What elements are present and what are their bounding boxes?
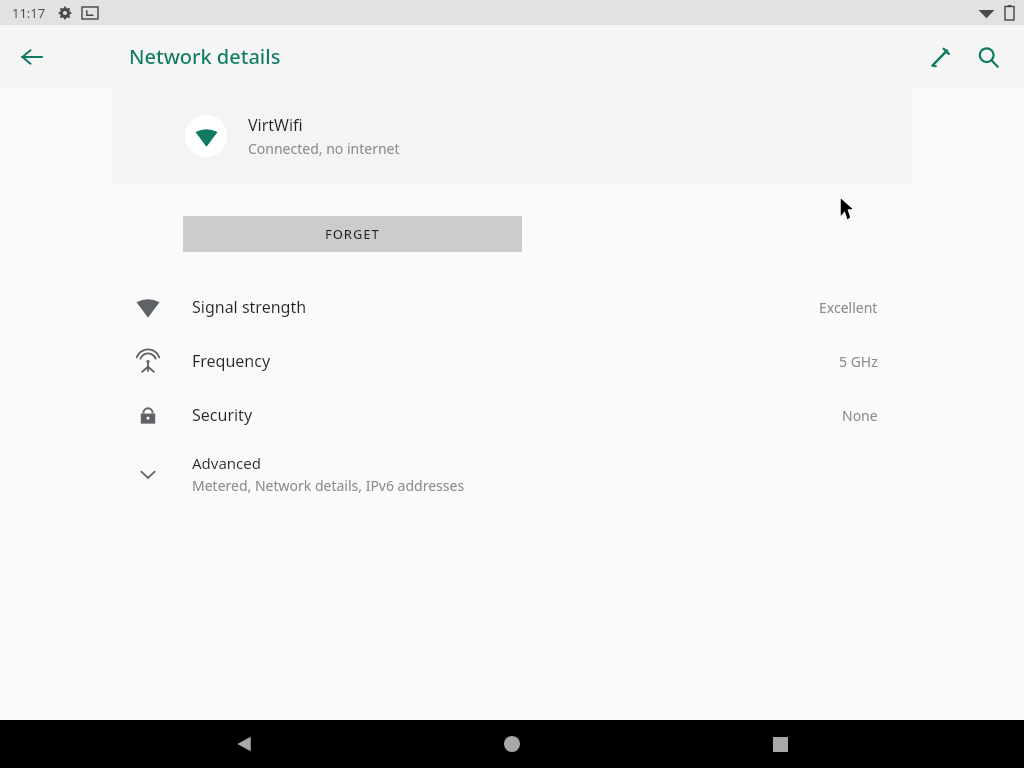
staticText: Excellent [819, 298, 878, 317]
button[interactable]: Recent apps [756, 720, 804, 768]
button[interactable]: VirtWifi [112, 88, 912, 184]
button[interactable]: Back [8, 33, 56, 81]
staticText: Security [192, 404, 253, 426]
button[interactable]: Edit [916, 33, 964, 81]
staticText: Advanced [192, 453, 262, 473]
staticText: Network details [129, 43, 281, 70]
button[interactable]: Home [488, 720, 536, 768]
staticText: FORGET [325, 225, 380, 243]
staticText: 5 GHz [839, 352, 878, 371]
staticText: Frequency [192, 350, 271, 372]
staticText: Metered, Network details, IPv6 addresses [192, 476, 465, 495]
button[interactable]: Search [964, 33, 1012, 81]
button[interactable]: Frequency [0, 334, 1024, 388]
staticText: VirtWifi [248, 114, 303, 136]
staticText: Connected, no internet [248, 139, 400, 158]
button[interactable]: Signal strength [0, 280, 1024, 334]
button[interactable]: Security [0, 388, 1024, 442]
staticText: None [842, 406, 878, 425]
button[interactable]: Back [220, 720, 268, 768]
button[interactable]: FORGET [183, 216, 522, 252]
staticText: 11:17 [12, 4, 46, 22]
button[interactable]: Advanced [0, 442, 1024, 506]
staticText: Signal strength [192, 296, 307, 318]
